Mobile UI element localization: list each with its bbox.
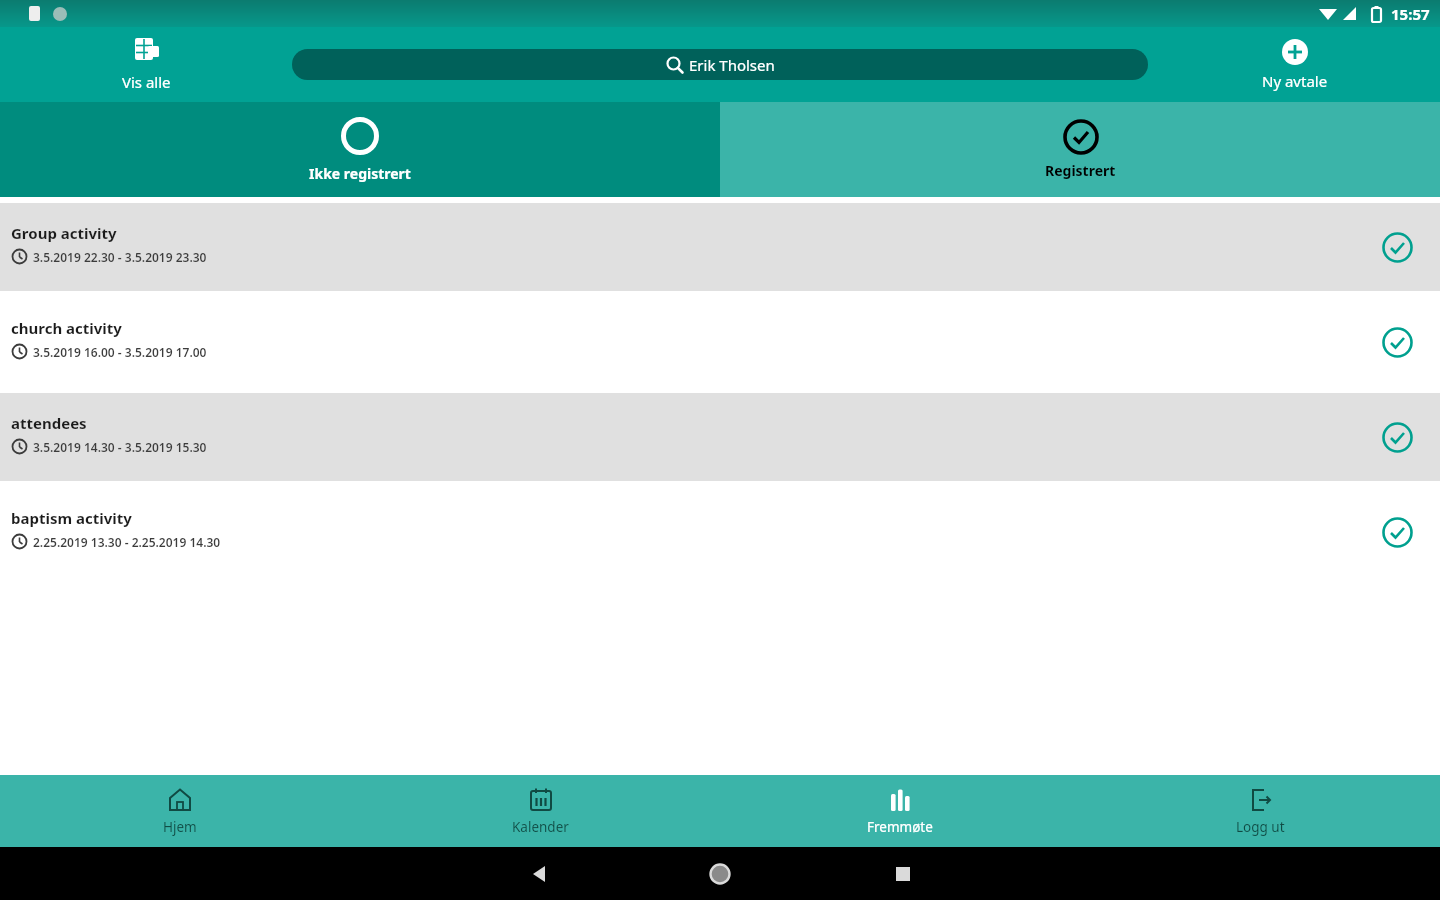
button[interactable]: Group activity: [0, 203, 1440, 291]
button[interactable]: Erik Tholsen: [292, 49, 1148, 80]
staticText: Hjem: [163, 818, 197, 836]
button[interactable]: Hjem: [0, 775, 360, 847]
button[interactable]: baptism activity: [0, 488, 1440, 576]
staticText: church activity: [11, 318, 122, 338]
button[interactable]: Registrert: [720, 102, 1440, 197]
staticText: Ikke registrert: [309, 164, 411, 183]
button[interactable]: church activity: [0, 298, 1440, 386]
button[interactable]: Fremmøte: [720, 775, 1080, 847]
staticText: Registrert: [1045, 161, 1116, 180]
staticText: Logg ut: [1236, 818, 1285, 836]
staticText: 2.25.2019 13.30 - 2.25.2019 14.30: [33, 534, 221, 550]
button[interactable]: attendees: [0, 393, 1440, 481]
button[interactable]: Vis alle: [122, 37, 171, 92]
staticText: Fremmøte: [867, 818, 933, 836]
staticText: Kalender: [512, 818, 569, 836]
button[interactable]: Kalender: [360, 775, 720, 847]
staticText: Ny avtale: [1262, 71, 1328, 91]
staticText: 3.5.2019 14.30 - 3.5.2019 15.30: [33, 439, 207, 455]
staticText: Erik Tholsen: [689, 55, 775, 75]
staticText: 3.5.2019 16.00 - 3.5.2019 17.00: [33, 344, 207, 360]
staticText: Vis alle: [122, 72, 171, 92]
button[interactable]: Logg ut: [1080, 775, 1440, 847]
button[interactable]: Ny avtale: [1262, 39, 1328, 91]
staticText: 15:57: [1391, 4, 1430, 24]
button[interactable]: Ikke registrert: [0, 102, 720, 197]
staticText: Group activity: [11, 223, 117, 243]
staticText: 3.5.2019 22.30 - 3.5.2019 23.30: [33, 249, 207, 265]
staticText: baptism activity: [11, 508, 132, 528]
staticText: attendees: [11, 413, 87, 433]
